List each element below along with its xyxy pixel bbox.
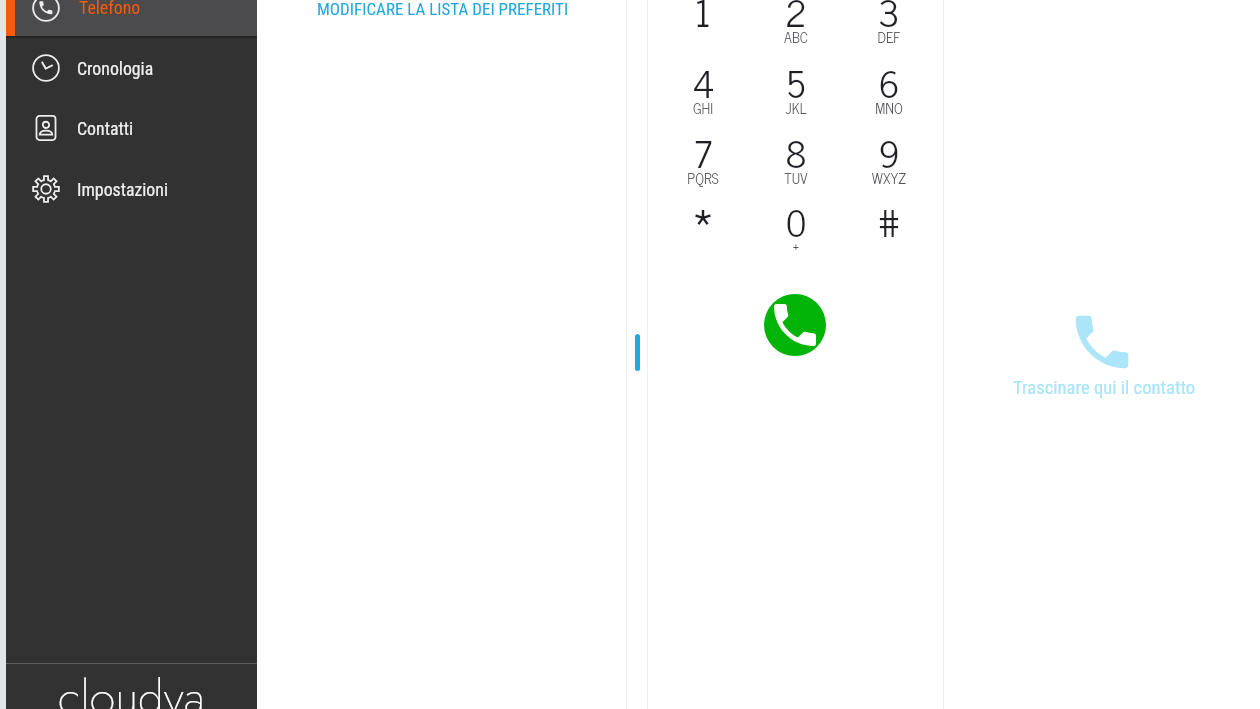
staticText: +	[750, 235, 842, 258]
button[interactable]: MODIFICARE LA LISTA DEI PREFERITI	[312, 0, 574, 22]
button[interactable]: Resize panel	[635, 334, 640, 371]
staticText: 8	[750, 122, 842, 182]
button[interactable]: 1	[657, 0, 749, 48]
button[interactable]: Call	[764, 294, 826, 356]
button[interactable]: 6	[843, 50, 935, 119]
button[interactable]: Cronologia	[6, 40, 257, 96]
button[interactable]: 8	[750, 120, 842, 189]
button[interactable]: 3	[843, 0, 935, 48]
staticText: 0	[750, 191, 842, 251]
button[interactable]: 4	[657, 50, 749, 119]
button[interactable]: 0	[750, 189, 842, 258]
staticText: WXYZ	[843, 166, 935, 189]
staticText: Impostazioni	[77, 179, 169, 200]
button[interactable]: Impostazioni	[6, 161, 257, 217]
button[interactable]: 7	[657, 120, 749, 189]
staticText: cloudya	[58, 664, 205, 709]
staticText: ABC	[750, 25, 842, 48]
staticText: 3	[843, 0, 935, 41]
staticText: Trascinare qui il contatto	[1013, 377, 1196, 399]
button[interactable]: 9	[843, 120, 935, 189]
button[interactable]: 5	[750, 50, 842, 119]
staticText: *	[657, 164, 749, 233]
staticText: 2	[750, 0, 842, 41]
button[interactable]: #	[843, 189, 935, 258]
button[interactable]: Drop a contact here to call	[994, 300, 1210, 404]
staticText: GHI	[657, 96, 749, 119]
staticText: Contatti	[77, 118, 134, 139]
staticText: JKL	[750, 96, 842, 119]
staticText: 5	[750, 52, 842, 112]
staticText: MNO	[843, 96, 935, 119]
staticText: 4	[657, 52, 749, 112]
button[interactable]: *	[657, 189, 749, 258]
staticText: 1	[657, 0, 749, 41]
staticText: TUV	[750, 166, 842, 189]
button[interactable]: Telefono	[6, 0, 257, 36]
staticText: Telefono	[79, 0, 141, 18]
staticText: 7	[657, 122, 749, 182]
button[interactable]: Contatti	[6, 100, 257, 156]
button[interactable]: 2	[750, 0, 842, 48]
staticText: MODIFICARE LA LISTA DEI PREFERITI	[317, 0, 569, 19]
staticText: #	[843, 191, 935, 251]
staticText: Cronologia	[77, 58, 154, 79]
staticText: PQRS	[657, 166, 749, 189]
staticText: 6	[843, 52, 935, 112]
staticText: 9	[843, 122, 935, 182]
staticText: DEF	[843, 25, 935, 48]
